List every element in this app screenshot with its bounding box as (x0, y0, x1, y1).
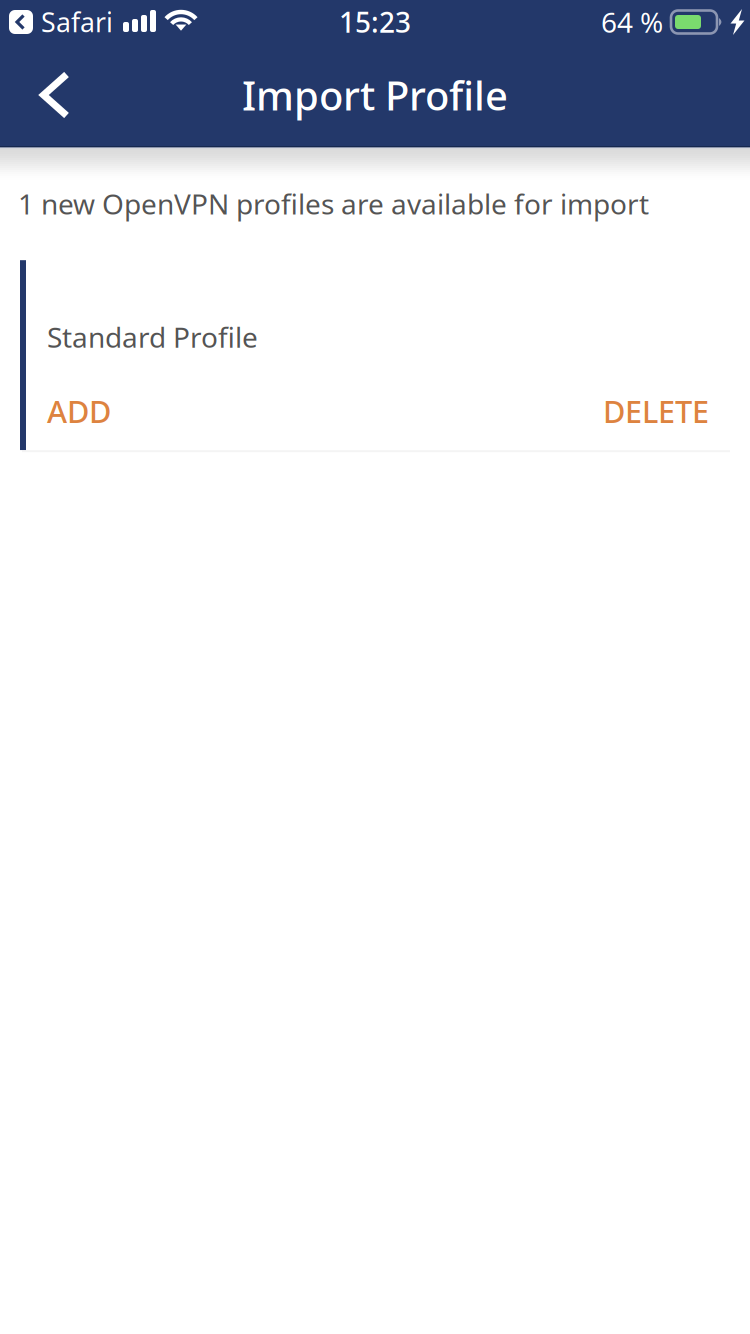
staticText: DELETE (603, 391, 709, 431)
staticText: Import Profile (242, 68, 508, 121)
button[interactable]: ADD (26, 373, 129, 449)
staticText: 15:23 (339, 3, 411, 41)
button[interactable]: Back to Safari (9, 0, 113, 50)
staticText: Safari (41, 4, 113, 40)
button[interactable]: Back (0, 44, 110, 146)
staticText: ADD (47, 391, 111, 431)
staticText: 1 new OpenVPN profiles are available for… (18, 185, 649, 222)
staticText: 64 % (601, 3, 663, 41)
button[interactable]: DELETE (585, 373, 750, 449)
staticText: Standard Profile (47, 318, 258, 355)
